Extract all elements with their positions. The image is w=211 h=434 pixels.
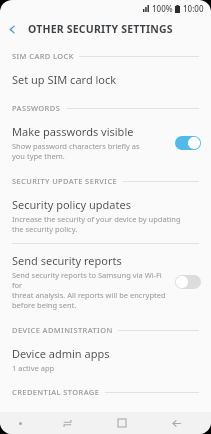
staticText: 10:00: [183, 3, 204, 14]
staticText: Set up SIM card lock: [12, 72, 117, 87]
button[interactable]: Keyboard indicator: [0, 412, 40, 434]
button[interactable]: Device admin apps: [0, 337, 211, 383]
staticText: Increase the security of your device by …: [12, 214, 181, 234]
staticText: Show password characters briefly as you …: [12, 141, 140, 161]
button[interactable]: Recents: [40, 412, 95, 434]
staticText: SECURITY UPDATE SERVICE: [12, 176, 118, 186]
staticText: SIM CARD LOCK: [12, 51, 74, 61]
staticText: 100%: [152, 3, 173, 14]
button[interactable]: Security policy updates: [0, 188, 211, 243]
button[interactable]: Off: [175, 275, 201, 289]
staticText: OTHER SECURITY SETTINGS: [28, 22, 173, 36]
staticText: PASSWORDS: [12, 103, 61, 113]
staticText: Send security reports: [12, 253, 122, 268]
staticText: CREDENTIAL STORAGE: [12, 387, 100, 397]
button[interactable]: On: [175, 136, 201, 150]
button[interactable]: Back: [149, 412, 203, 434]
staticText: Security policy updates: [12, 197, 131, 212]
staticText: 1 active app: [12, 363, 55, 373]
staticText: Device admin apps: [12, 346, 110, 361]
button[interactable]: Set up SIM card lock: [0, 63, 211, 99]
button[interactable]: Back: [0, 17, 24, 41]
staticText: DEVICE ADMINISTRATION: [12, 325, 113, 335]
staticText: Make passwords visible: [12, 124, 134, 139]
button[interactable]: Send security reports: [0, 244, 211, 319]
button[interactable]: Make passwords visible: [0, 115, 211, 170]
staticText: Send security reports to Samsung via Wi-…: [12, 270, 169, 310]
button[interactable]: Home: [95, 412, 149, 434]
